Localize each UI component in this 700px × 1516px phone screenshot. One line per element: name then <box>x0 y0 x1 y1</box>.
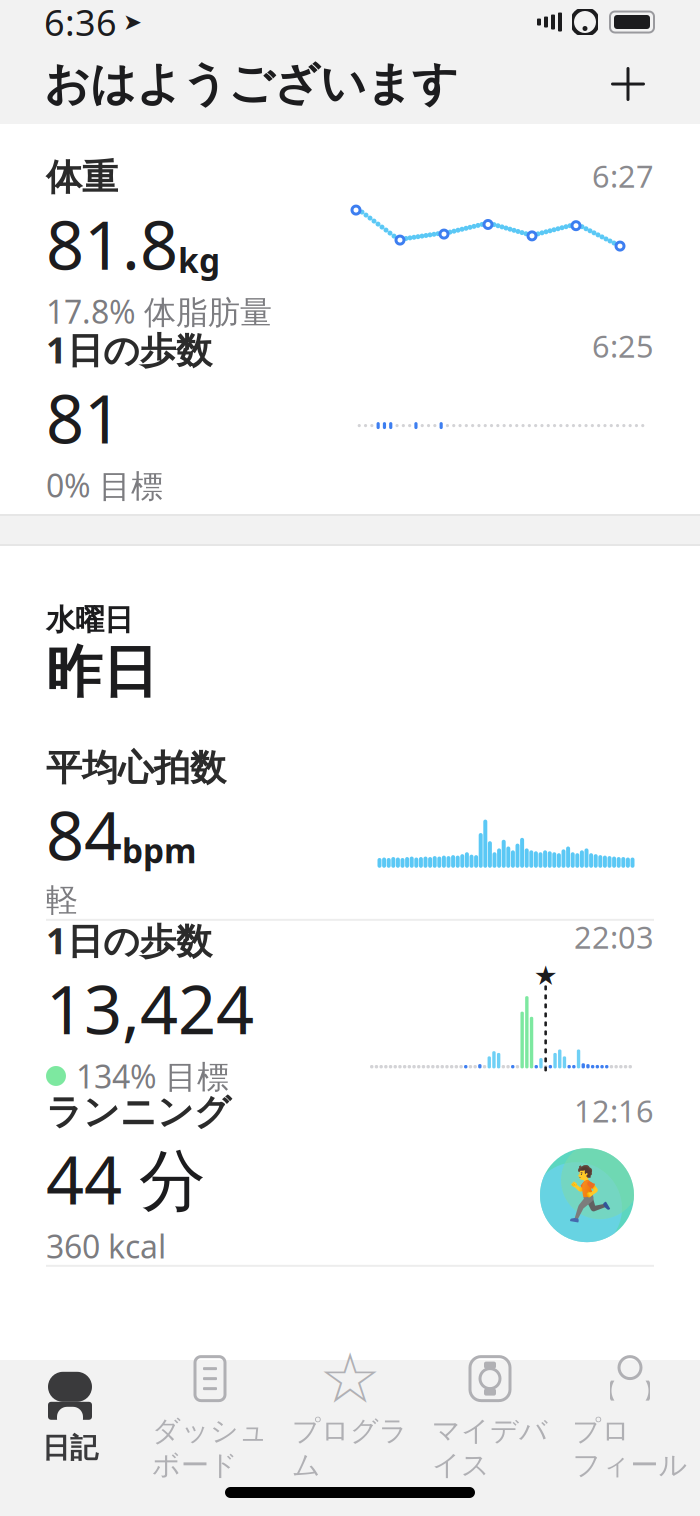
staticText: 0% 目標 <box>46 464 163 506</box>
button[interactable]: 1日の歩数 <box>0 330 700 502</box>
staticText: 6:27 <box>592 155 654 196</box>
staticText: 1日の歩数 <box>46 326 212 373</box>
button[interactable]: プロフィール <box>560 1360 700 1476</box>
button[interactable]: 1日の歩数 <box>0 921 700 1093</box>
staticText: 44 分 <box>46 1134 206 1223</box>
staticText: 81 <box>46 373 122 462</box>
staticText: ダッシュボード <box>152 1414 268 1482</box>
button[interactable]: 平均心拍数 <box>0 747 700 919</box>
staticText: 22:03 <box>574 916 654 957</box>
staticText: 134% 目標 <box>76 1055 229 1097</box>
staticText: 360 kcal <box>46 1225 166 1267</box>
staticText: 6:25 <box>592 326 654 366</box>
button[interactable]: ☆ <box>280 1360 420 1476</box>
button[interactable]: 追加 <box>600 56 656 112</box>
staticText: ランニング <box>46 1090 231 1134</box>
staticText: kg <box>178 238 220 282</box>
staticText: ★ <box>534 960 558 991</box>
staticText: プロフィール <box>572 1414 687 1482</box>
staticText: 昨日 <box>46 638 158 707</box>
staticText: 軽 <box>46 880 78 920</box>
staticText: 81.8 <box>46 200 178 288</box>
staticText: 水曜日 <box>46 602 133 638</box>
button[interactable]: 体重 <box>0 158 700 330</box>
staticText: ☆ <box>319 1339 381 1418</box>
staticText: bpm <box>122 828 197 873</box>
staticText: マイデバイス <box>432 1414 548 1482</box>
button[interactable]: ランニング <box>0 1093 700 1265</box>
staticText: プログラム <box>292 1414 408 1482</box>
button[interactable]: ダッシュボード <box>140 1360 280 1476</box>
staticText: 12:16 <box>574 1090 654 1131</box>
staticText: ➤ <box>123 9 142 35</box>
staticText: 17.8% 体脂肪量 <box>46 290 272 333</box>
button[interactable]: 日記 <box>0 1360 140 1476</box>
staticText: 体重 <box>46 155 118 200</box>
staticText: 🏃 <box>554 1165 620 1226</box>
staticText: 日記 <box>42 1431 98 1465</box>
staticText: 13,424 <box>46 964 254 1053</box>
staticText: おはようございます <box>44 56 458 112</box>
button[interactable]: マイデバイス <box>420 1360 560 1476</box>
staticText: 平均心拍数 <box>46 746 226 790</box>
staticText: 6:36 <box>44 0 117 46</box>
staticText: 84 <box>46 790 122 878</box>
staticText: 1日の歩数 <box>46 916 212 964</box>
